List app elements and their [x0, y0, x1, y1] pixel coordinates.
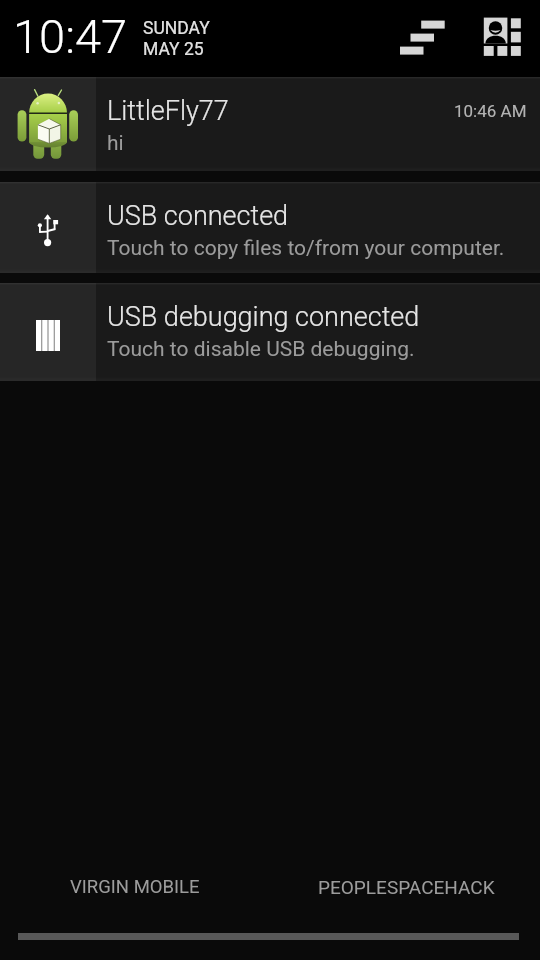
button[interactable]: VIRGIN MOBILE: [70, 876, 200, 898]
button[interactable]: LittleFly77: [0, 77, 540, 171]
staticText: LittleFly77: [107, 95, 229, 127]
staticText: USB connected: [107, 200, 289, 232]
staticText: 10:46 AM: [454, 101, 527, 121]
staticText: Touch to copy files to/from your compute…: [107, 236, 505, 261]
staticText: PEOPLESPACEHACK: [318, 876, 495, 898]
staticText: SUNDAY: [143, 18, 210, 39]
staticText: USB debugging connected: [107, 301, 420, 333]
staticText: Touch to disable USB debugging.: [107, 337, 415, 362]
button[interactable]: Quick settings: [474, 10, 530, 66]
staticText: 10:47: [13, 9, 128, 64]
staticText: VIRGIN MOBILE: [70, 876, 200, 898]
button[interactable]: PEOPLESPACEHACK: [318, 876, 495, 898]
button[interactable]: USB debugging connected: [0, 283, 540, 381]
button[interactable]: Clear all notifications: [392, 10, 448, 66]
staticText: hi: [107, 131, 124, 156]
staticText: MAY 25: [143, 39, 204, 60]
button[interactable]: USB connected: [0, 182, 540, 273]
